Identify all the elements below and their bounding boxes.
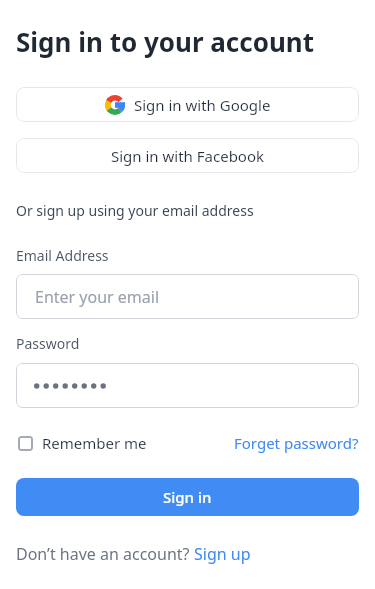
staticText: Email Address xyxy=(16,246,109,265)
button[interactable]: Sign in with Facebook xyxy=(16,138,359,173)
button[interactable] xyxy=(16,363,359,408)
button[interactable]: Sign up xyxy=(194,543,251,565)
staticText: Password xyxy=(16,334,80,353)
staticText: Sign in with Facebook xyxy=(111,146,265,166)
staticText: Sign in xyxy=(163,487,212,507)
button[interactable]: Forget password? xyxy=(234,433,359,453)
staticText: Sign in with Google xyxy=(134,95,271,115)
button[interactable]: Sign in xyxy=(16,478,359,516)
button[interactable]: Enter your email xyxy=(16,274,359,319)
staticText: Don’t have an account? xyxy=(16,543,194,565)
button[interactable]: Remember me xyxy=(16,433,147,453)
staticText: Sign in to your account xyxy=(16,24,315,59)
button[interactable]: Sign in with Google xyxy=(16,87,359,122)
staticText: Enter your email xyxy=(35,286,160,308)
staticText: Or sign up using your email address xyxy=(16,201,254,220)
staticText: Remember me xyxy=(42,433,147,453)
